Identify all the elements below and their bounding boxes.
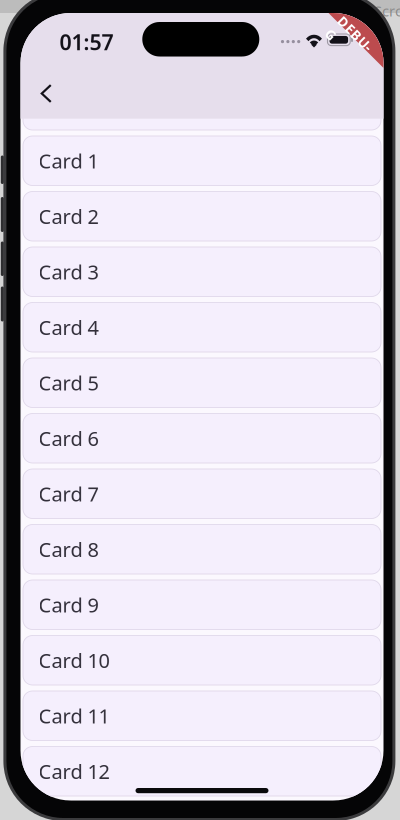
button[interactable]: Card 7 [23, 469, 381, 518]
staticText: Card 8 [38, 536, 98, 563]
staticText: Card 13 [38, 813, 109, 820]
button[interactable]: Card 10 [23, 635, 381, 685]
button[interactable]: Back [25, 71, 67, 115]
button[interactable]: Card 4 [23, 302, 381, 352]
staticText: Card 2 [38, 203, 98, 230]
button[interactable] [23, 80, 381, 130]
staticText: Card 12 [38, 758, 109, 785]
staticText: Card 3 [38, 258, 98, 285]
button[interactable]: Card 5 [23, 358, 381, 407]
staticText: 01:57 [59, 28, 113, 56]
staticText: Card 4 [38, 314, 98, 341]
button[interactable]: Card 3 [23, 247, 381, 296]
button[interactable]: Card 11 [23, 691, 381, 740]
staticText: Card 1 [38, 147, 98, 174]
staticText: Card 10 [38, 647, 109, 674]
staticText: Card 9 [38, 591, 98, 618]
button[interactable]: Card 12 [23, 746, 381, 796]
staticText: Card 11 [38, 702, 109, 729]
staticText: Card 6 [38, 425, 98, 452]
button[interactable]: Card 6 [23, 413, 381, 463]
staticText: Card 7 [38, 480, 98, 507]
button[interactable]: Card 9 [23, 580, 381, 629]
staticText: Scroll [374, 1, 400, 20]
staticText: DEBUG [333, 27, 382, 45]
staticText: Card 5 [38, 369, 98, 396]
button[interactable]: Card 8 [23, 524, 381, 574]
button[interactable]: Card 2 [23, 191, 381, 241]
button[interactable]: Card 13 [23, 802, 381, 820]
button[interactable]: Card 1 [23, 136, 381, 185]
